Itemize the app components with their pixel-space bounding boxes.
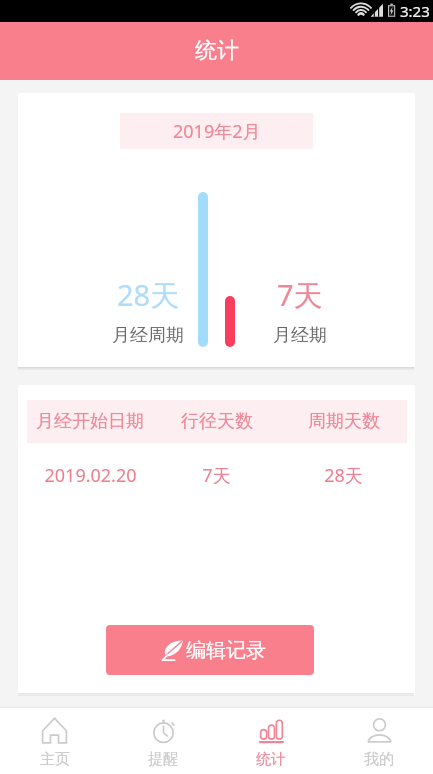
staticText: 行径天数 <box>181 410 253 433</box>
staticText: 月经期 <box>273 324 327 347</box>
staticText: 月经周期 <box>112 324 184 347</box>
staticText: 7天 <box>277 275 323 315</box>
staticText: 主页 <box>40 750 70 769</box>
staticText: 编辑记录 <box>186 638 266 663</box>
staticText: 2019年2月 <box>173 119 261 144</box>
staticText: 2019.02.20 <box>44 463 137 488</box>
button[interactable]: 我的 <box>325 713 433 769</box>
button[interactable]: 统计 <box>217 713 325 769</box>
staticText: 28天 <box>117 275 180 315</box>
staticText: 周期天数 <box>308 410 380 433</box>
staticText: 我的 <box>364 750 394 769</box>
staticText: 7天 <box>202 463 231 488</box>
button[interactable]: 提醒 <box>109 713 217 769</box>
button[interactable]: 2019年2月 <box>120 113 313 149</box>
button[interactable]: 编辑记录 <box>106 625 314 675</box>
staticText: 统计 <box>256 750 286 769</box>
staticText: 月经开始日期 <box>36 410 144 433</box>
staticText: 统计 <box>195 37 239 65</box>
staticText: 28天 <box>324 463 363 488</box>
staticText: 3:23 <box>400 1 430 21</box>
button[interactable]: 主页 <box>0 713 109 769</box>
staticText: 提醒 <box>148 750 178 769</box>
button[interactable]: 2019.02.20 <box>27 459 407 491</box>
